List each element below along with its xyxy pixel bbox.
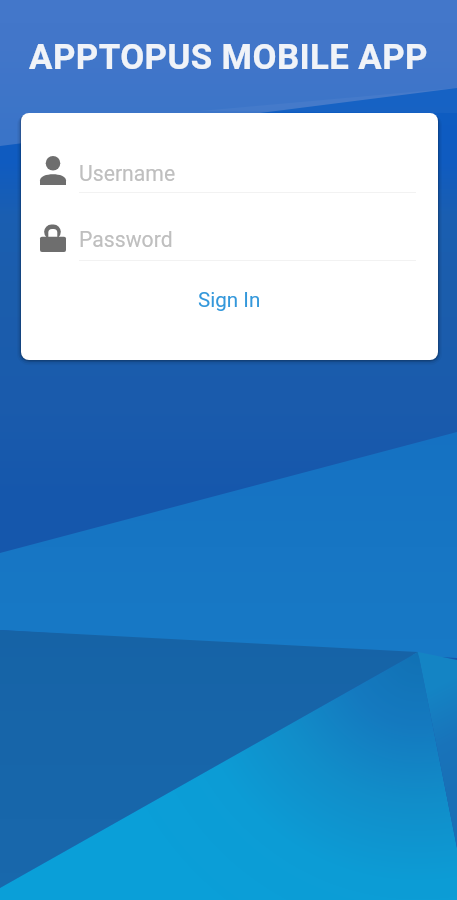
button[interactable]: Sign In <box>21 275 438 325</box>
button[interactable] <box>21 144 438 196</box>
staticText: Password <box>79 227 173 252</box>
staticText: Username <box>79 161 176 186</box>
button[interactable] <box>21 211 438 263</box>
staticText: APPTOPUS MOBILE APP <box>0 37 457 78</box>
staticText: Sign In <box>198 288 261 312</box>
